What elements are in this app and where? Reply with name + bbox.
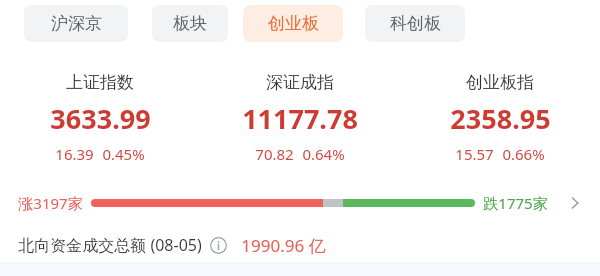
staticText: 创业板指: [466, 72, 534, 93]
button[interactable]: 板块: [152, 5, 228, 42]
other: Information: [209, 236, 227, 254]
button[interactable]: 北向资金成交总额 (08-05): [0, 228, 600, 262]
button[interactable]: 创业板: [243, 5, 343, 42]
staticText: 15.57: [455, 144, 494, 164]
staticText: 0.64%: [302, 144, 345, 164]
staticText: 0.45%: [102, 144, 145, 164]
staticText: 科创板: [390, 13, 441, 34]
staticText: 11177.78: [242, 100, 358, 137]
staticText: 创业板: [268, 13, 319, 34]
button[interactable]: 上证指数: [0, 68, 200, 164]
staticText: 跌1775家: [483, 193, 548, 213]
staticText: 0.66%: [502, 144, 545, 164]
button[interactable]: 沪深京: [24, 5, 128, 42]
staticText: 2358.95: [450, 100, 551, 137]
staticText: 16.39: [55, 144, 94, 164]
staticText: 上证指数: [66, 72, 134, 93]
button[interactable]: 涨3197家: [0, 186, 600, 220]
staticText: 板块: [173, 13, 207, 34]
staticText: 沪深京: [51, 13, 102, 34]
staticText: 深证成指: [266, 72, 334, 93]
button[interactable]: 深证成指: [200, 68, 400, 164]
staticText: 1990.96 亿: [241, 234, 326, 257]
button[interactable]: 创业板指: [400, 68, 600, 164]
staticText: 3633.99: [50, 100, 151, 137]
button[interactable]: 科创板: [365, 5, 465, 42]
staticText: 北向资金成交总额 (08-05): [18, 234, 202, 256]
staticText: 70.82: [255, 144, 294, 164]
staticText: 涨3197家: [18, 193, 83, 213]
other: More details: [558, 186, 592, 220]
